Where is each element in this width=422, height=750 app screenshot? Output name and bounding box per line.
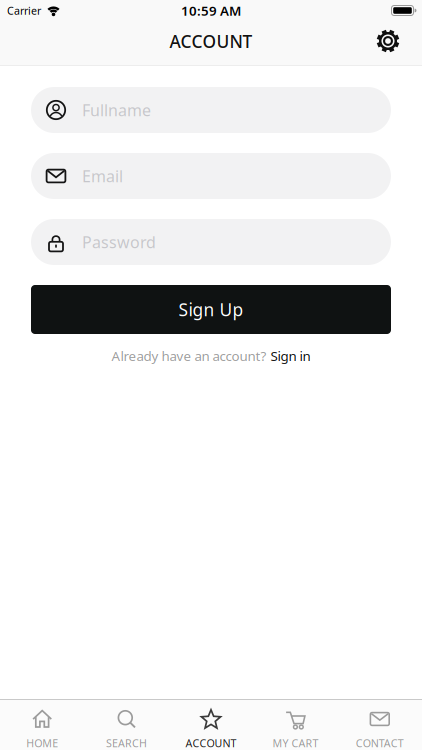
staticText: Sign in: [270, 347, 310, 365]
button[interactable]: Password: [31, 219, 391, 265]
staticText: 10:59 AM: [181, 2, 241, 19]
staticText: ACCOUNT: [185, 736, 236, 750]
button[interactable]: [376, 31, 422, 55]
staticText: CONTACT: [356, 736, 404, 750]
button[interactable]: Email: [31, 153, 391, 199]
button[interactable]: MY CART: [253, 700, 338, 750]
staticText: Carrier: [7, 3, 41, 18]
button[interactable]: Fullname: [31, 87, 391, 133]
staticText: Fullname: [82, 99, 151, 121]
staticText: MY CART: [272, 736, 318, 750]
staticText: Sign Up: [178, 298, 243, 321]
staticText: HOME: [26, 736, 58, 750]
button[interactable]: HOME: [0, 700, 84, 750]
button[interactable]: CONTACT: [338, 700, 422, 750]
staticText: Already have an account?: [111, 347, 266, 365]
button[interactable]: Sign Up: [31, 285, 391, 334]
button[interactable]: Sign in: [270, 347, 310, 365]
staticText: SEARCH: [106, 736, 147, 750]
staticText: Email: [82, 165, 123, 187]
button[interactable]: ACCOUNT: [169, 700, 253, 750]
staticText: Password: [82, 231, 156, 253]
button[interactable]: SEARCH: [84, 700, 169, 750]
staticText: ACCOUNT: [169, 30, 252, 53]
